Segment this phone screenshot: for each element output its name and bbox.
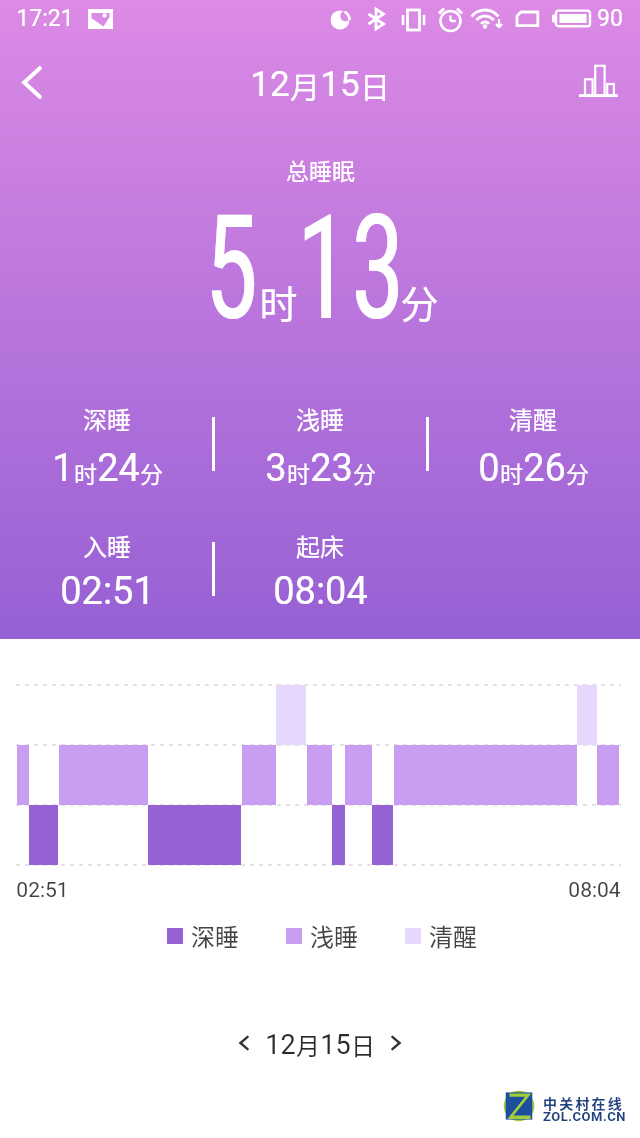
staticText: 分	[400, 274, 439, 329]
staticText: 月	[290, 63, 320, 106]
staticText: 17:21	[16, 5, 74, 32]
staticText: 时	[74, 456, 97, 489]
staticText: 5	[204, 183, 259, 353]
button[interactable]: Back	[0, 48, 64, 120]
staticText: 24	[97, 446, 140, 491]
staticText: 清醒	[509, 401, 557, 436]
staticText: 起床	[296, 528, 344, 563]
staticText: 12	[250, 64, 290, 105]
staticText: 分	[140, 456, 163, 489]
staticText: 日	[351, 1027, 375, 1062]
staticText: 分	[566, 456, 589, 489]
staticText: 15	[320, 1029, 351, 1061]
staticText: 深睡	[191, 918, 239, 953]
staticText: 月	[296, 1027, 320, 1062]
staticText: 时	[500, 456, 523, 489]
staticText: 总睡眠	[286, 153, 355, 186]
staticText: 1	[52, 446, 74, 491]
button[interactable]: 12	[0, 1020, 640, 1066]
staticText: 23	[310, 446, 353, 491]
staticText: 15	[320, 64, 360, 105]
staticText: ZOL.COM.CN	[543, 1109, 626, 1124]
staticText: 入睡	[83, 528, 131, 563]
staticText: 浅睡	[310, 918, 358, 953]
staticText: 02:51	[16, 878, 69, 903]
staticText: 26	[523, 446, 566, 491]
button[interactable]: Statistics	[568, 48, 630, 120]
staticText: 3	[265, 446, 287, 491]
staticText: 08:04	[568, 878, 621, 903]
staticText: 清醒	[429, 918, 477, 953]
staticText: 时	[259, 274, 298, 329]
staticText: 时	[287, 456, 310, 489]
staticText: 13	[296, 183, 405, 353]
staticText: 08:04	[273, 569, 368, 614]
staticText: 0	[478, 446, 500, 491]
staticText: 深睡	[83, 401, 131, 436]
staticText: 中关村在线	[543, 1093, 624, 1113]
staticText: 12	[265, 1029, 296, 1061]
staticText: 02:51	[60, 569, 155, 614]
staticText: 浅睡	[296, 401, 344, 436]
staticText: 分	[353, 456, 376, 489]
staticText: 日	[360, 63, 390, 106]
staticText: 90	[597, 5, 623, 32]
